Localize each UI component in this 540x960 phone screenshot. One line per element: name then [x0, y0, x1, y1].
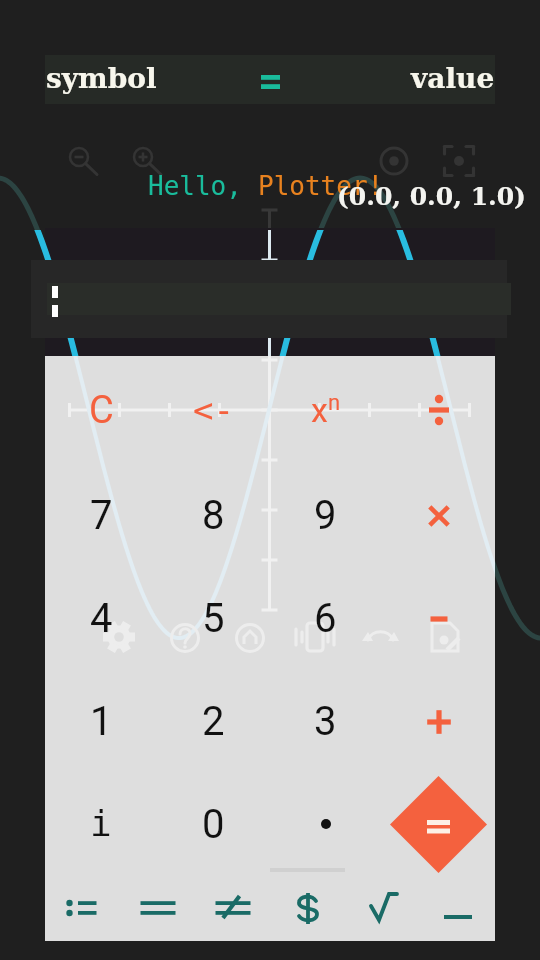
button[interactable]: 1 — [45, 670, 157, 773]
staticText: i — [90, 803, 112, 845]
staticText: 2 — [202, 698, 225, 745]
button[interactable]: assign — [45, 875, 120, 941]
other: Plus — [426, 709, 452, 735]
staticText: symbol — [46, 62, 157, 95]
button[interactable]: under — [420, 875, 495, 941]
button[interactable]: 4 — [45, 567, 157, 670]
button[interactable]: 0 — [157, 773, 269, 875]
staticText: <- — [193, 390, 234, 430]
staticText: 7 — [90, 492, 113, 539]
staticText: (0.0, 0.0, 1.0) — [337, 182, 526, 211]
staticText: 0 — [202, 801, 225, 848]
button[interactable]: neq — [195, 875, 270, 941]
button[interactable]: x — [269, 356, 382, 464]
staticText: x — [311, 390, 328, 430]
button[interactable]: Plus — [382, 670, 495, 773]
other: Divide — [424, 395, 454, 425]
button[interactable]: Equals — [382, 773, 495, 875]
button[interactable]: Minus — [382, 567, 495, 670]
button[interactable]: 9 — [269, 464, 382, 567]
staticText: 4 — [90, 595, 113, 642]
button[interactable]: Zoom out — [56, 136, 102, 182]
button[interactable] — [31, 260, 507, 338]
button[interactable]: Divide — [382, 356, 495, 464]
staticText: 5 — [202, 595, 225, 642]
button[interactable]: 5 — [157, 567, 269, 670]
other: Equals — [390, 776, 487, 873]
button[interactable]: dollar — [270, 875, 345, 941]
button[interactable]: Record — [371, 138, 417, 184]
staticText: 3 — [314, 698, 337, 745]
staticText: 1 — [90, 698, 113, 745]
button[interactable]: 3 — [269, 670, 382, 773]
button[interactable] — [269, 773, 382, 875]
button[interactable]: Multiply — [382, 464, 495, 567]
button[interactable]: Zoom in — [120, 136, 166, 182]
staticText: 8 — [202, 492, 225, 539]
button[interactable]: 8 — [157, 464, 269, 567]
staticText: 9 — [314, 492, 337, 539]
staticText: n — [328, 390, 341, 416]
button[interactable]: C — [45, 356, 157, 464]
button[interactable]: sqrt — [345, 875, 420, 941]
staticText: 6 — [314, 595, 337, 642]
other: Multiply — [427, 504, 451, 528]
staticText: value — [411, 62, 495, 95]
button[interactable]: 7 — [45, 464, 157, 567]
staticText: Hello, — [148, 171, 258, 201]
staticText: Plotter! — [258, 171, 384, 201]
button[interactable]: eq — [120, 875, 195, 941]
button[interactable]: <- — [157, 356, 269, 464]
button[interactable]: symbol — [45, 55, 495, 104]
staticText: C — [89, 388, 114, 433]
button[interactable]: Fit to screen — [436, 138, 482, 184]
button[interactable]: 6 — [269, 567, 382, 670]
button[interactable]: 2 — [157, 670, 269, 773]
other: Minus — [428, 608, 450, 630]
button[interactable]: i — [45, 773, 157, 875]
